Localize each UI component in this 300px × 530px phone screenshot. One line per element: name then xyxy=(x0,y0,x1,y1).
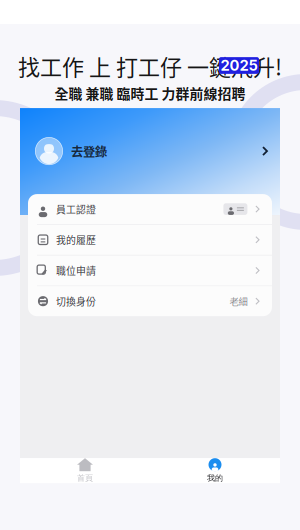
button[interactable]: 首頁 xyxy=(20,458,150,483)
button[interactable]: 職位申請 xyxy=(28,255,272,285)
staticText: 全職 兼職 臨時工 力群前線招聘 xyxy=(54,83,245,103)
staticText: 員工認證 xyxy=(56,202,96,216)
staticText: 我的履歷 xyxy=(56,233,96,247)
button[interactable]: 切換身份 xyxy=(28,286,272,316)
button[interactable]: 員工認證 xyxy=(28,194,272,224)
staticText: 首頁 xyxy=(77,473,93,483)
staticText: 職位申請 xyxy=(56,263,96,278)
staticText: 2025 xyxy=(220,57,257,74)
button[interactable]: 我的 xyxy=(150,458,280,483)
staticText: 我的 xyxy=(207,473,223,483)
button[interactable]: 去登錄 xyxy=(20,108,280,194)
staticText: 去登錄 xyxy=(71,142,107,160)
staticText: 老細 xyxy=(229,294,247,308)
staticText: 切換身份 xyxy=(56,294,96,308)
staticText: 找工作 上 打工仔 一鍵飛升! xyxy=(18,50,282,82)
button[interactable]: 我的履歷 xyxy=(28,225,272,255)
